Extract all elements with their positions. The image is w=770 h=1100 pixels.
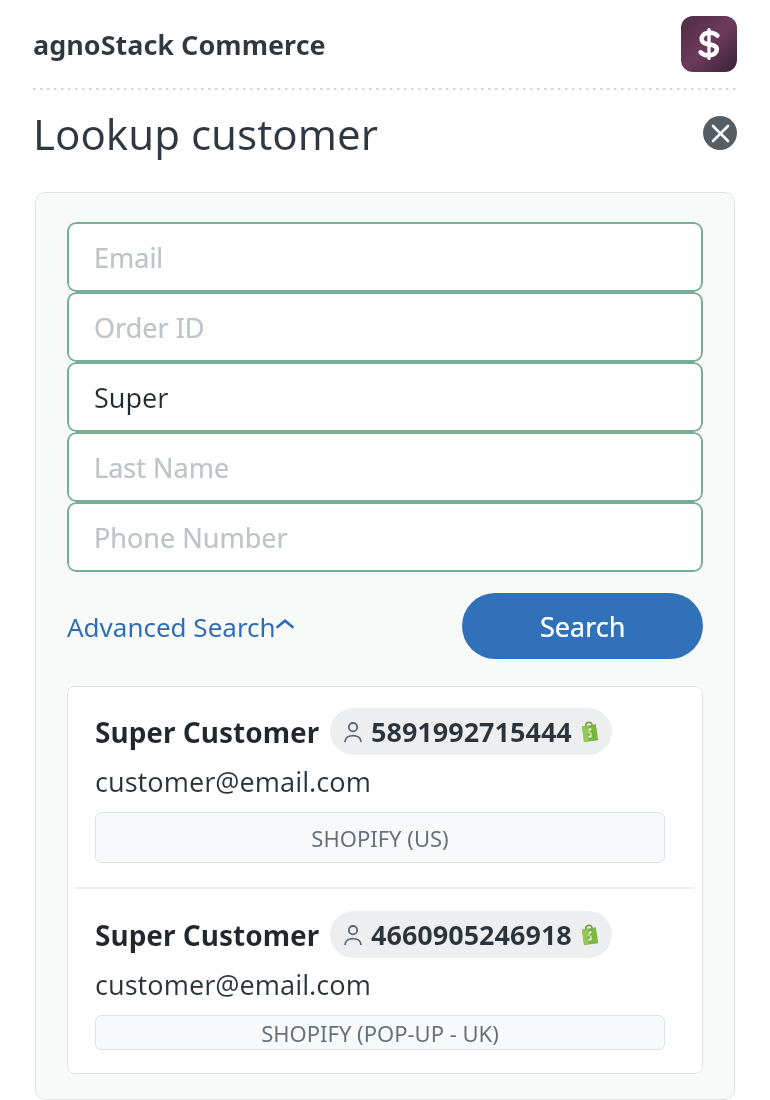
button[interactable]: Super — [67, 362, 703, 432]
button[interactable]: Search — [462, 593, 703, 659]
button[interactable]: Order ID — [67, 292, 703, 362]
staticText: Lookup customer — [33, 105, 379, 162]
staticText: Order ID — [94, 309, 205, 346]
button[interactable]: Last Name — [67, 432, 703, 502]
button[interactable]: Super Customer — [67, 889, 703, 1074]
staticText: customer@email.com — [95, 966, 371, 1003]
staticText: Last Name — [94, 449, 230, 486]
staticText: Super — [94, 379, 169, 416]
button[interactable]: Advanced Search — [67, 603, 294, 650]
button[interactable]: agnoStack logo — [681, 16, 737, 72]
button[interactable]: SHOPIFY (POP-UP - UK) — [95, 1015, 665, 1050]
staticText: Super Customer — [95, 916, 320, 954]
staticText: Advanced Search — [67, 609, 276, 644]
button[interactable]: Super Customer — [67, 686, 703, 887]
staticText: Phone Number — [94, 519, 288, 556]
staticText: SHOPIFY (US) — [311, 823, 449, 853]
staticText: 5891992715444 — [371, 713, 572, 750]
staticText: Search — [540, 608, 626, 645]
staticText: 4660905246918 — [371, 916, 572, 953]
button[interactable]: Email — [67, 222, 703, 292]
button[interactable]: Close — [703, 116, 737, 150]
button[interactable]: SHOPIFY (US) — [95, 812, 665, 863]
staticText: Email — [94, 239, 164, 276]
staticText: Super Customer — [95, 713, 320, 751]
staticText: customer@email.com — [95, 763, 371, 800]
button[interactable]: Phone Number — [67, 502, 703, 572]
staticText: SHOPIFY (POP-UP - UK) — [261, 1018, 499, 1048]
staticText: agnoStack Commerce — [33, 26, 326, 63]
